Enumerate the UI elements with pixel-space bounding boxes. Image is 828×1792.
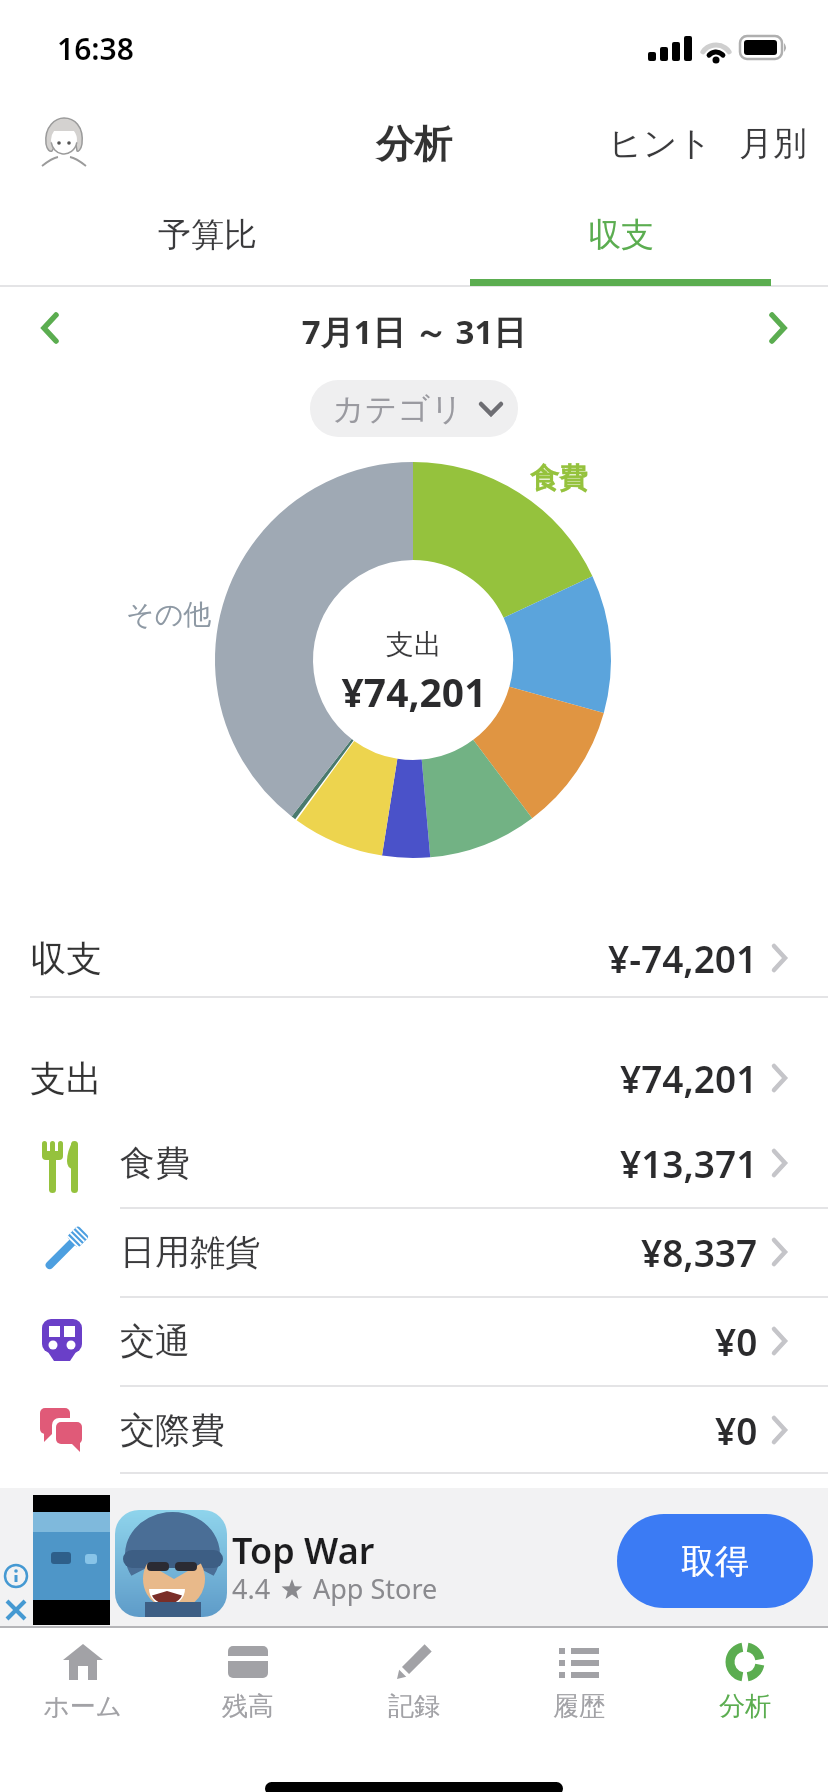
staticText: App Store	[313, 1570, 438, 1607]
button[interactable]	[768, 313, 788, 343]
staticText: ¥0	[715, 1405, 758, 1455]
staticText: 支出	[30, 1056, 102, 1101]
button[interactable]: ホーム	[0, 1640, 166, 1750]
button[interactable]: 収支	[414, 205, 828, 265]
staticText: ¥-74,201	[608, 933, 758, 983]
staticText: ¥74,201	[620, 1053, 758, 1103]
staticText: 支出	[0, 627, 828, 662]
button[interactable]: 記録	[331, 1640, 497, 1750]
staticText: 16:38	[57, 28, 134, 69]
staticText: 取得	[681, 1540, 749, 1583]
staticText: 交通	[120, 1319, 190, 1363]
staticText: その他	[126, 597, 212, 632]
staticText: 7月1日 ～ 31日	[0, 309, 828, 354]
button[interactable]: 日用雑貨	[0, 1208, 828, 1296]
button[interactable]: 履歴	[496, 1640, 662, 1750]
button[interactable]: 予算比	[0, 205, 414, 265]
button[interactable]: 取得	[617, 1514, 813, 1608]
staticText: ¥0	[715, 1316, 758, 1366]
staticText: 記録	[388, 1690, 440, 1723]
button[interactable]: 交通	[0, 1297, 828, 1385]
button[interactable]: 交際費	[0, 1386, 828, 1474]
staticText: 日用雑貨	[120, 1230, 260, 1274]
staticText: 4.4	[232, 1570, 271, 1607]
staticText: ¥74,201	[0, 665, 828, 718]
staticText: 交際費	[120, 1408, 225, 1452]
button[interactable]: カテゴリ	[310, 380, 518, 437]
button[interactable]: 支出	[0, 1045, 828, 1111]
staticText: 分析	[0, 120, 828, 168]
button[interactable]: ヒント	[608, 122, 713, 165]
staticText: Top War	[232, 1526, 375, 1575]
button[interactable]: 食費	[0, 1119, 828, 1207]
button[interactable]: 収支	[0, 925, 828, 991]
staticText: カテゴリ	[332, 389, 463, 429]
staticText: 残高	[222, 1690, 274, 1723]
staticText: ¥8,337	[641, 1227, 758, 1277]
button[interactable]: 残高	[165, 1640, 331, 1750]
button[interactable]: 月別	[739, 122, 807, 165]
button[interactable]: Top War	[0, 1488, 828, 1628]
staticText: 収支	[30, 936, 102, 981]
staticText: ホーム	[43, 1690, 123, 1723]
staticText: 収支	[588, 214, 654, 256]
button[interactable]: 分析	[662, 1640, 828, 1750]
staticText: 予算比	[158, 214, 257, 256]
button[interactable]	[40, 313, 60, 343]
button[interactable]	[42, 118, 86, 168]
staticText: ¥13,371	[620, 1138, 758, 1188]
staticText: 分析	[719, 1690, 771, 1723]
staticText: 食費	[530, 460, 588, 497]
staticText: 履歴	[553, 1690, 605, 1723]
staticText: 食費	[120, 1141, 190, 1185]
